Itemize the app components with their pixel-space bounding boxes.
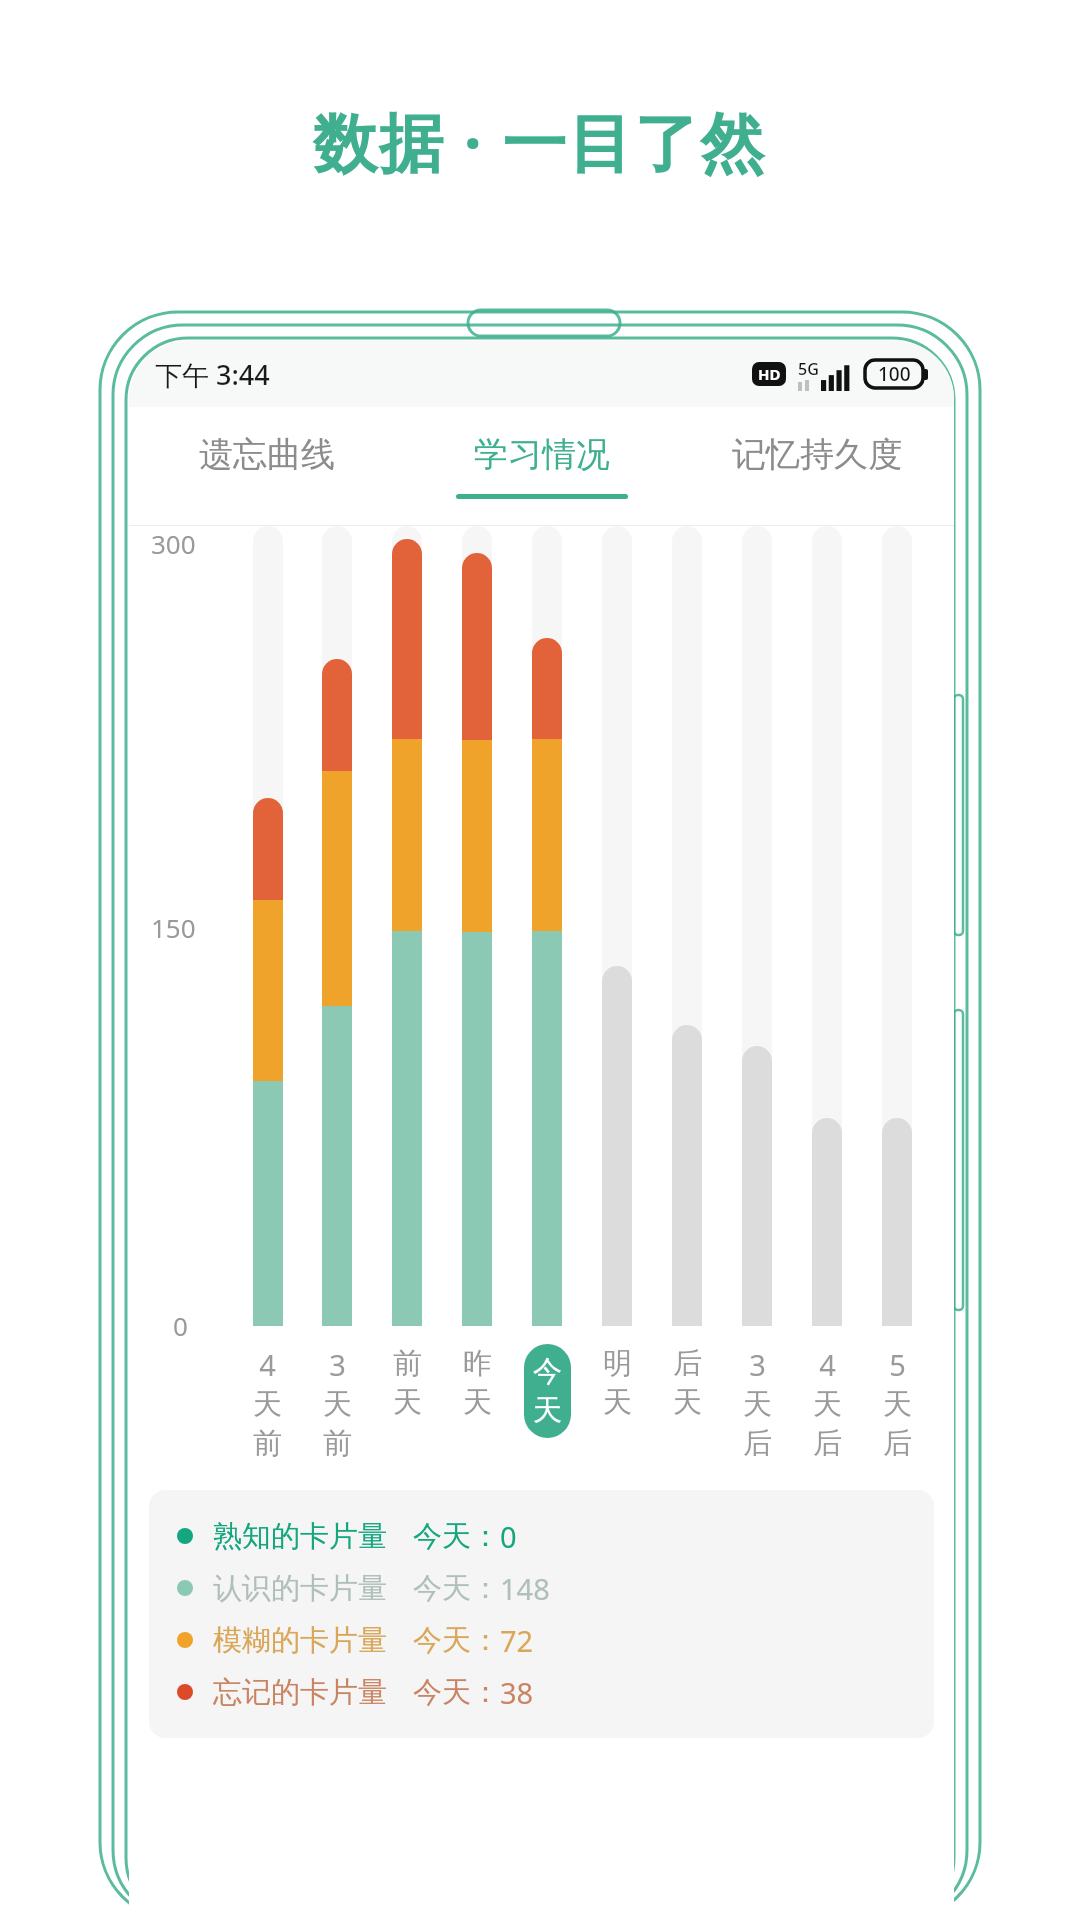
staticText: 3	[329, 1345, 346, 1384]
button[interactable]: 忘记的卡片量	[177, 1666, 906, 1718]
staticText: 模糊的卡片量	[213, 1622, 387, 1659]
staticText: 数据 · 一目了然	[313, 98, 767, 185]
button[interactable]: 明	[594, 1344, 641, 1422]
button[interactable]: 后	[664, 1344, 711, 1422]
staticText: 后	[673, 1345, 702, 1382]
staticText: 记忆持久度	[732, 433, 902, 476]
button[interactable]: 今	[524, 1344, 571, 1438]
staticText: 天	[253, 1386, 282, 1423]
staticText: 后	[883, 1425, 912, 1462]
staticText: 天	[813, 1386, 842, 1423]
staticText: 天	[743, 1386, 772, 1423]
staticText: 38	[500, 1673, 534, 1712]
staticText: 天	[393, 1384, 422, 1421]
staticText: 今天：	[413, 1518, 500, 1555]
button[interactable]: 认识的卡片量	[177, 1562, 906, 1614]
staticText: 72	[500, 1621, 534, 1660]
staticText: 学习情况	[474, 433, 610, 476]
staticText: 忘记的卡片量	[213, 1674, 387, 1711]
staticText: 4	[259, 1345, 276, 1384]
staticText: 4	[819, 1345, 836, 1384]
staticText: 300	[151, 526, 196, 561]
staticText: 100	[878, 361, 911, 387]
staticText: 熟知的卡片量	[213, 1518, 387, 1555]
staticText: 明	[603, 1345, 632, 1382]
staticText: 后	[743, 1425, 772, 1462]
staticText: 0	[500, 1517, 517, 1556]
staticText: 今天：	[413, 1622, 500, 1659]
staticText: 150	[151, 910, 196, 945]
staticText: 认识的卡片量	[213, 1570, 387, 1607]
button[interactable]: 熟知的卡片量	[177, 1510, 906, 1562]
staticText: 前	[323, 1425, 352, 1462]
button[interactable]: 遗忘曲线	[129, 407, 404, 525]
button[interactable]: 4	[804, 1344, 851, 1463]
staticText: 天	[533, 1392, 562, 1429]
button[interactable]: 3	[734, 1344, 781, 1463]
button[interactable]: 5	[874, 1344, 921, 1463]
staticText: 天	[883, 1386, 912, 1423]
staticText: 天	[603, 1384, 632, 1421]
button[interactable]: 学习情况	[404, 407, 679, 525]
staticText: 5	[889, 1345, 906, 1384]
staticText: 3	[749, 1345, 766, 1384]
button[interactable]: 记忆持久度	[679, 407, 954, 525]
staticText: HD	[758, 364, 781, 384]
button[interactable]: 3	[314, 1344, 361, 1463]
staticText: 天	[673, 1384, 702, 1421]
staticText: 5G	[798, 358, 819, 380]
staticText: 今	[533, 1353, 562, 1390]
staticText: 遗忘曲线	[199, 433, 335, 476]
staticText: 前	[393, 1345, 422, 1382]
staticText: 后	[813, 1425, 842, 1462]
staticText: 148	[500, 1569, 550, 1608]
staticText: 下午 3:44	[155, 356, 270, 393]
button[interactable]: 4	[244, 1344, 291, 1463]
button[interactable]: 前	[384, 1344, 431, 1422]
staticText: 昨	[463, 1345, 492, 1382]
staticText: 天	[323, 1386, 352, 1423]
staticText: 前	[253, 1425, 282, 1462]
button[interactable]: 模糊的卡片量	[177, 1614, 906, 1666]
staticText: 0	[173, 1308, 188, 1343]
staticText: 今天：	[413, 1674, 500, 1711]
staticText: 天	[463, 1384, 492, 1421]
staticText: 今天：	[413, 1570, 500, 1607]
button[interactable]: 昨	[454, 1344, 501, 1422]
